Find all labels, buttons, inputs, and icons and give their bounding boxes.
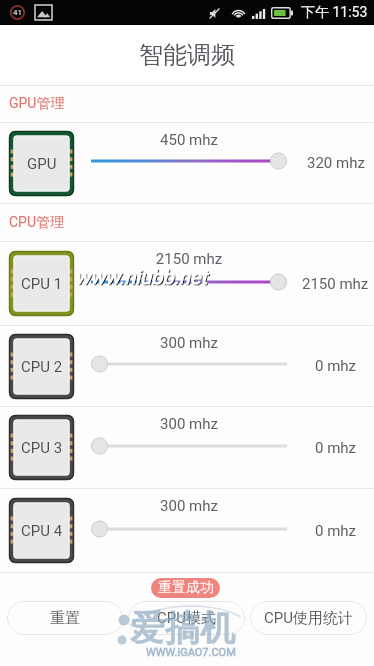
staticText: 300 mhz: [91, 415, 287, 433]
button[interactable]: GPU: [0, 123, 374, 203]
staticText: 320 mhz: [307, 154, 365, 172]
staticText: 450 mhz: [91, 131, 287, 149]
staticText: GPU: [27, 155, 57, 173]
staticText: 爱搞机: [130, 606, 235, 650]
staticText: 0 mhz: [315, 522, 357, 540]
staticText: www.niubb.net: [76, 266, 209, 289]
staticText: CPU 2: [21, 358, 63, 376]
staticText: 重置: [50, 609, 80, 628]
staticText: 2150 mhz: [302, 275, 369, 293]
button[interactable]: 重置: [7, 601, 123, 635]
staticText: 下午 11:53: [301, 4, 368, 22]
staticText: 重置成功: [158, 579, 214, 597]
button[interactable]: CPU 3: [0, 407, 374, 488]
staticText: 300 mhz: [91, 497, 287, 515]
button[interactable]: CPU使用统计: [250, 601, 367, 635]
staticText: CPU管理: [9, 214, 65, 232]
button[interactable]: CPU 1: [0, 242, 374, 325]
staticText: 300 mhz: [91, 334, 287, 352]
staticText: www.niubb.net: [75, 265, 208, 288]
staticText: CPU使用统计: [264, 609, 353, 628]
staticText: 41: [13, 8, 22, 17]
staticText: 0 mhz: [315, 439, 357, 457]
staticText: CPU模式: [157, 609, 216, 628]
staticText: CPU 3: [21, 439, 63, 457]
staticText: 2150 mhz: [91, 250, 287, 268]
button[interactable]: CPU 4: [0, 489, 374, 572]
button[interactable]: CPU模式: [128, 601, 245, 635]
staticText: WWW.iGAO7.COM: [146, 646, 236, 659]
staticText: 智能调频: [139, 40, 235, 70]
staticText: GPU管理: [9, 95, 65, 113]
staticText: CPU 1: [21, 275, 63, 293]
staticText: CPU 4: [21, 522, 63, 540]
staticText: 0 mhz: [315, 357, 357, 375]
other: Notifications: [10, 5, 25, 20]
button[interactable]: CPU 2: [0, 326, 374, 406]
